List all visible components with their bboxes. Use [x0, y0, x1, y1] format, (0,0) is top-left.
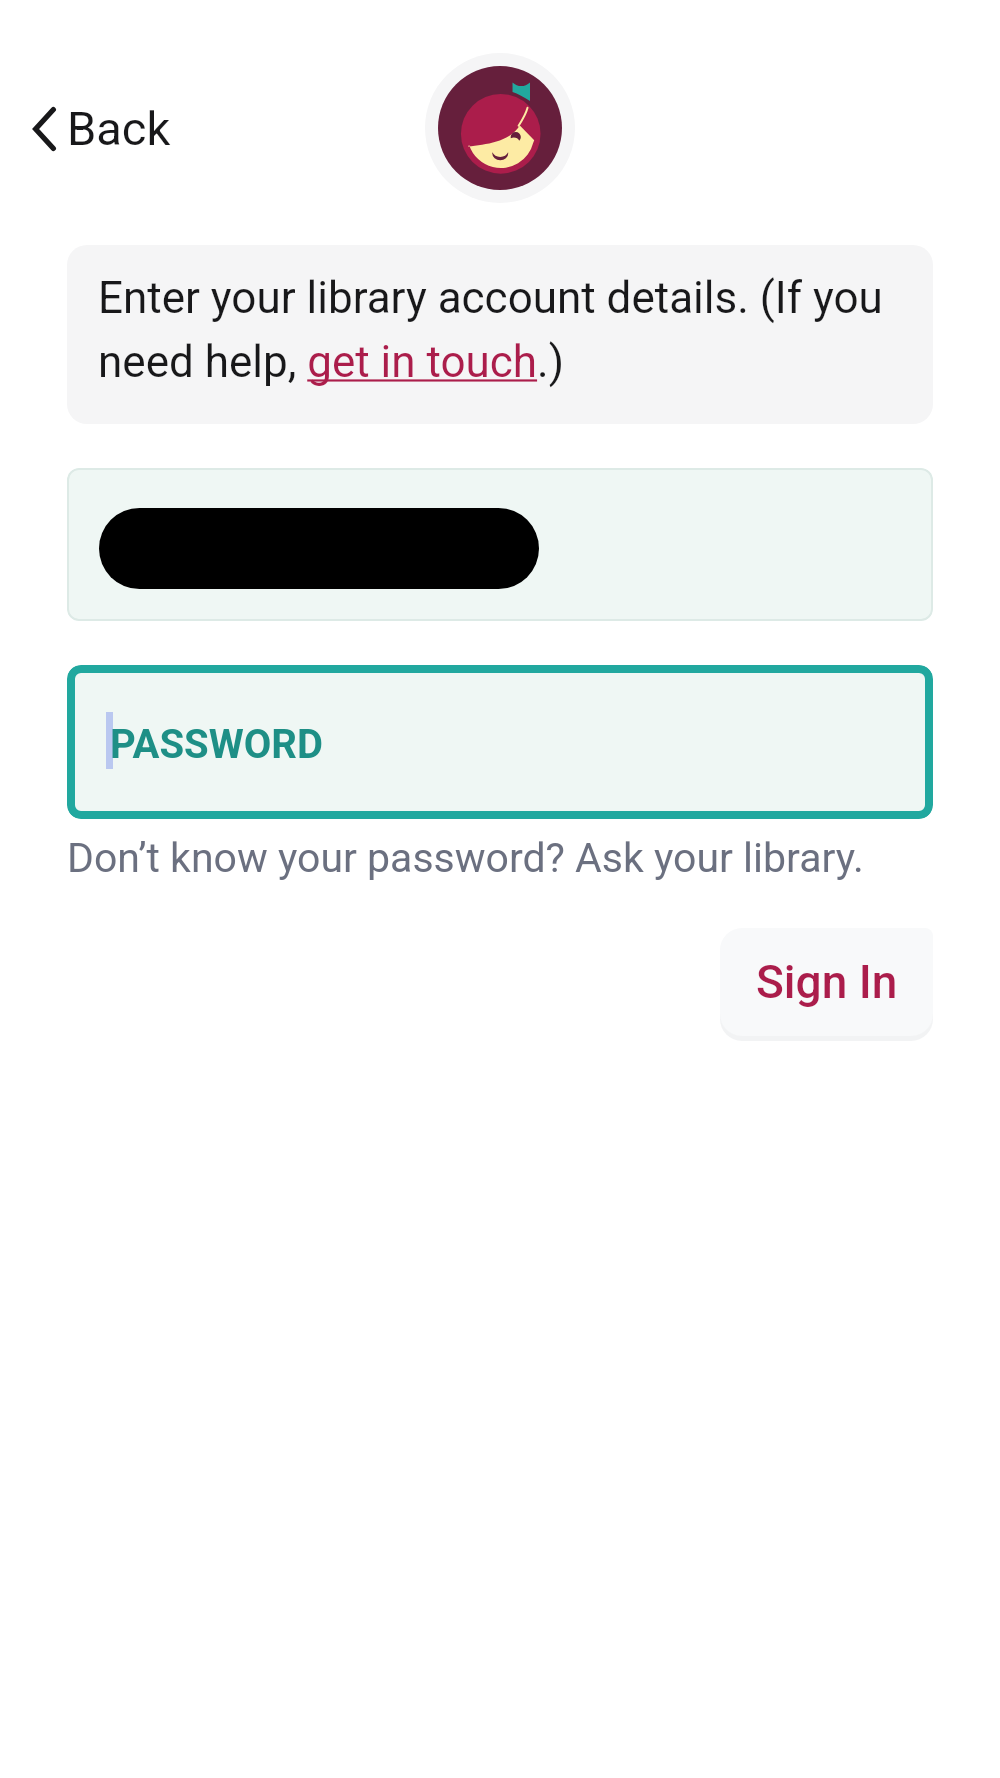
staticText: Back	[67, 101, 171, 156]
button[interactable]: Back	[25, 91, 179, 166]
button[interactable]: Sign In	[720, 928, 933, 1036]
other: Libby	[425, 53, 575, 203]
staticText: Don’t know your password? Ask your libra…	[67, 834, 864, 882]
staticText: Sign In	[756, 955, 898, 1009]
staticText: PASSWORD	[110, 721, 323, 768]
staticText: Enter your library account details. (If …	[98, 272, 904, 388]
button[interactable]: PASSWORD	[67, 665, 933, 819]
button[interactable]: Library card number	[67, 468, 933, 621]
